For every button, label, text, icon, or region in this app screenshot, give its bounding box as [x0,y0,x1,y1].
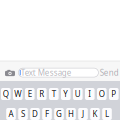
button[interactable]: U [73,88,83,100]
button[interactable]: Text Message [18,68,98,77]
button[interactable]: A [6,108,16,120]
button[interactable]: T [49,88,59,100]
button[interactable]: H [66,108,76,120]
button[interactable]: R [37,88,47,100]
staticText: D [32,109,38,119]
staticText: K [92,109,97,119]
staticText: J [82,109,84,119]
button[interactable]: Send [100,67,119,78]
button[interactable]: D [30,108,40,120]
staticText: E [28,89,32,99]
staticText: Send [100,67,119,78]
button[interactable]: Q [1,88,11,100]
button[interactable]: J [78,108,88,120]
staticText: T [52,89,56,99]
staticText: O [99,89,105,99]
staticText: P [111,89,116,99]
button[interactable]: W [13,88,23,100]
button[interactable]: F [42,108,52,120]
staticText: H [68,109,74,119]
button[interactable]: L [102,108,112,120]
button[interactable]: I [85,88,95,100]
staticText: Y [63,89,68,99]
staticText: S [21,109,25,119]
staticText: Text Message [21,67,72,78]
staticText: U [75,89,81,99]
staticText: G [56,109,62,119]
staticText: A [8,109,13,119]
button[interactable]: Camera [3,67,16,79]
staticText: F [45,109,49,119]
staticText: Q [3,89,9,99]
staticText: W [14,89,21,99]
button[interactable]: O [97,88,107,100]
button[interactable]: S [18,108,28,120]
staticText: R [39,89,44,99]
staticText: I [88,89,91,99]
staticText: L [105,109,109,119]
button[interactable]: P [109,88,119,100]
button[interactable]: Y [61,88,71,100]
button[interactable]: E [25,88,35,100]
button[interactable]: K [90,108,100,120]
button[interactable]: G [54,108,64,120]
